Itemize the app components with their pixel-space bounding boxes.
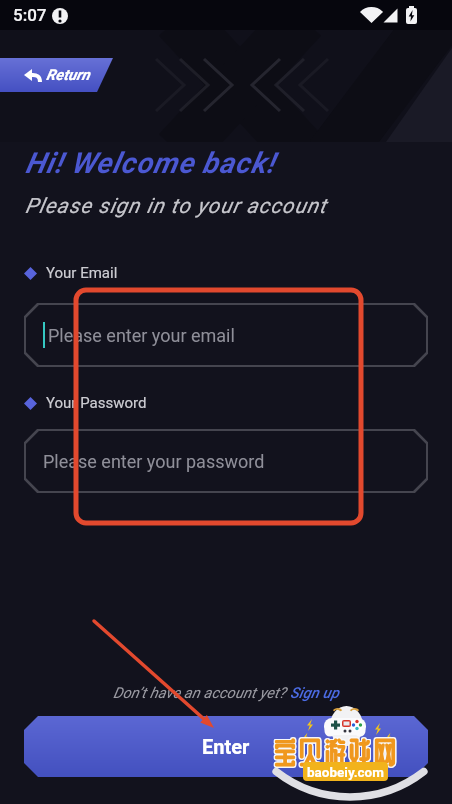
staticText: Please sign in to your account [25, 194, 327, 219]
staticText: Please enter your password [43, 451, 265, 472]
staticText: 宝贝游戏网 [273, 737, 398, 766]
button[interactable]: Please enter your email [24, 303, 428, 367]
staticText: 宝贝游戏网 [274, 736, 399, 765]
staticText: Please enter your email [48, 325, 235, 346]
staticText: 宝贝游戏网 [274, 737, 399, 766]
button[interactable]: Sign up [290, 684, 339, 702]
staticText: 5:07 [13, 5, 47, 25]
staticText: Your Email [46, 264, 118, 282]
button[interactable]: Please enter your password [24, 429, 428, 493]
staticText: baobeiy.com [307, 764, 384, 780]
staticText: 宝贝游戏网 [275, 738, 400, 767]
staticText: Hi! Welcome back! [25, 146, 275, 180]
staticText: Don’t have an account yet? [113, 684, 290, 702]
staticText: 宝贝游戏网 [273, 736, 398, 765]
staticText: 宝贝游戏网 [274, 738, 399, 767]
staticText: Return [46, 66, 90, 84]
staticText: 宝贝游戏网 [273, 738, 398, 767]
button[interactable]: Return [0, 58, 113, 92]
staticText: 宝贝游戏网 [275, 736, 400, 765]
staticText: Your Password [46, 394, 147, 412]
staticText: 宝贝游戏网 [275, 737, 400, 766]
staticText: Enter [202, 735, 250, 758]
button[interactable]: Enter [24, 716, 428, 777]
